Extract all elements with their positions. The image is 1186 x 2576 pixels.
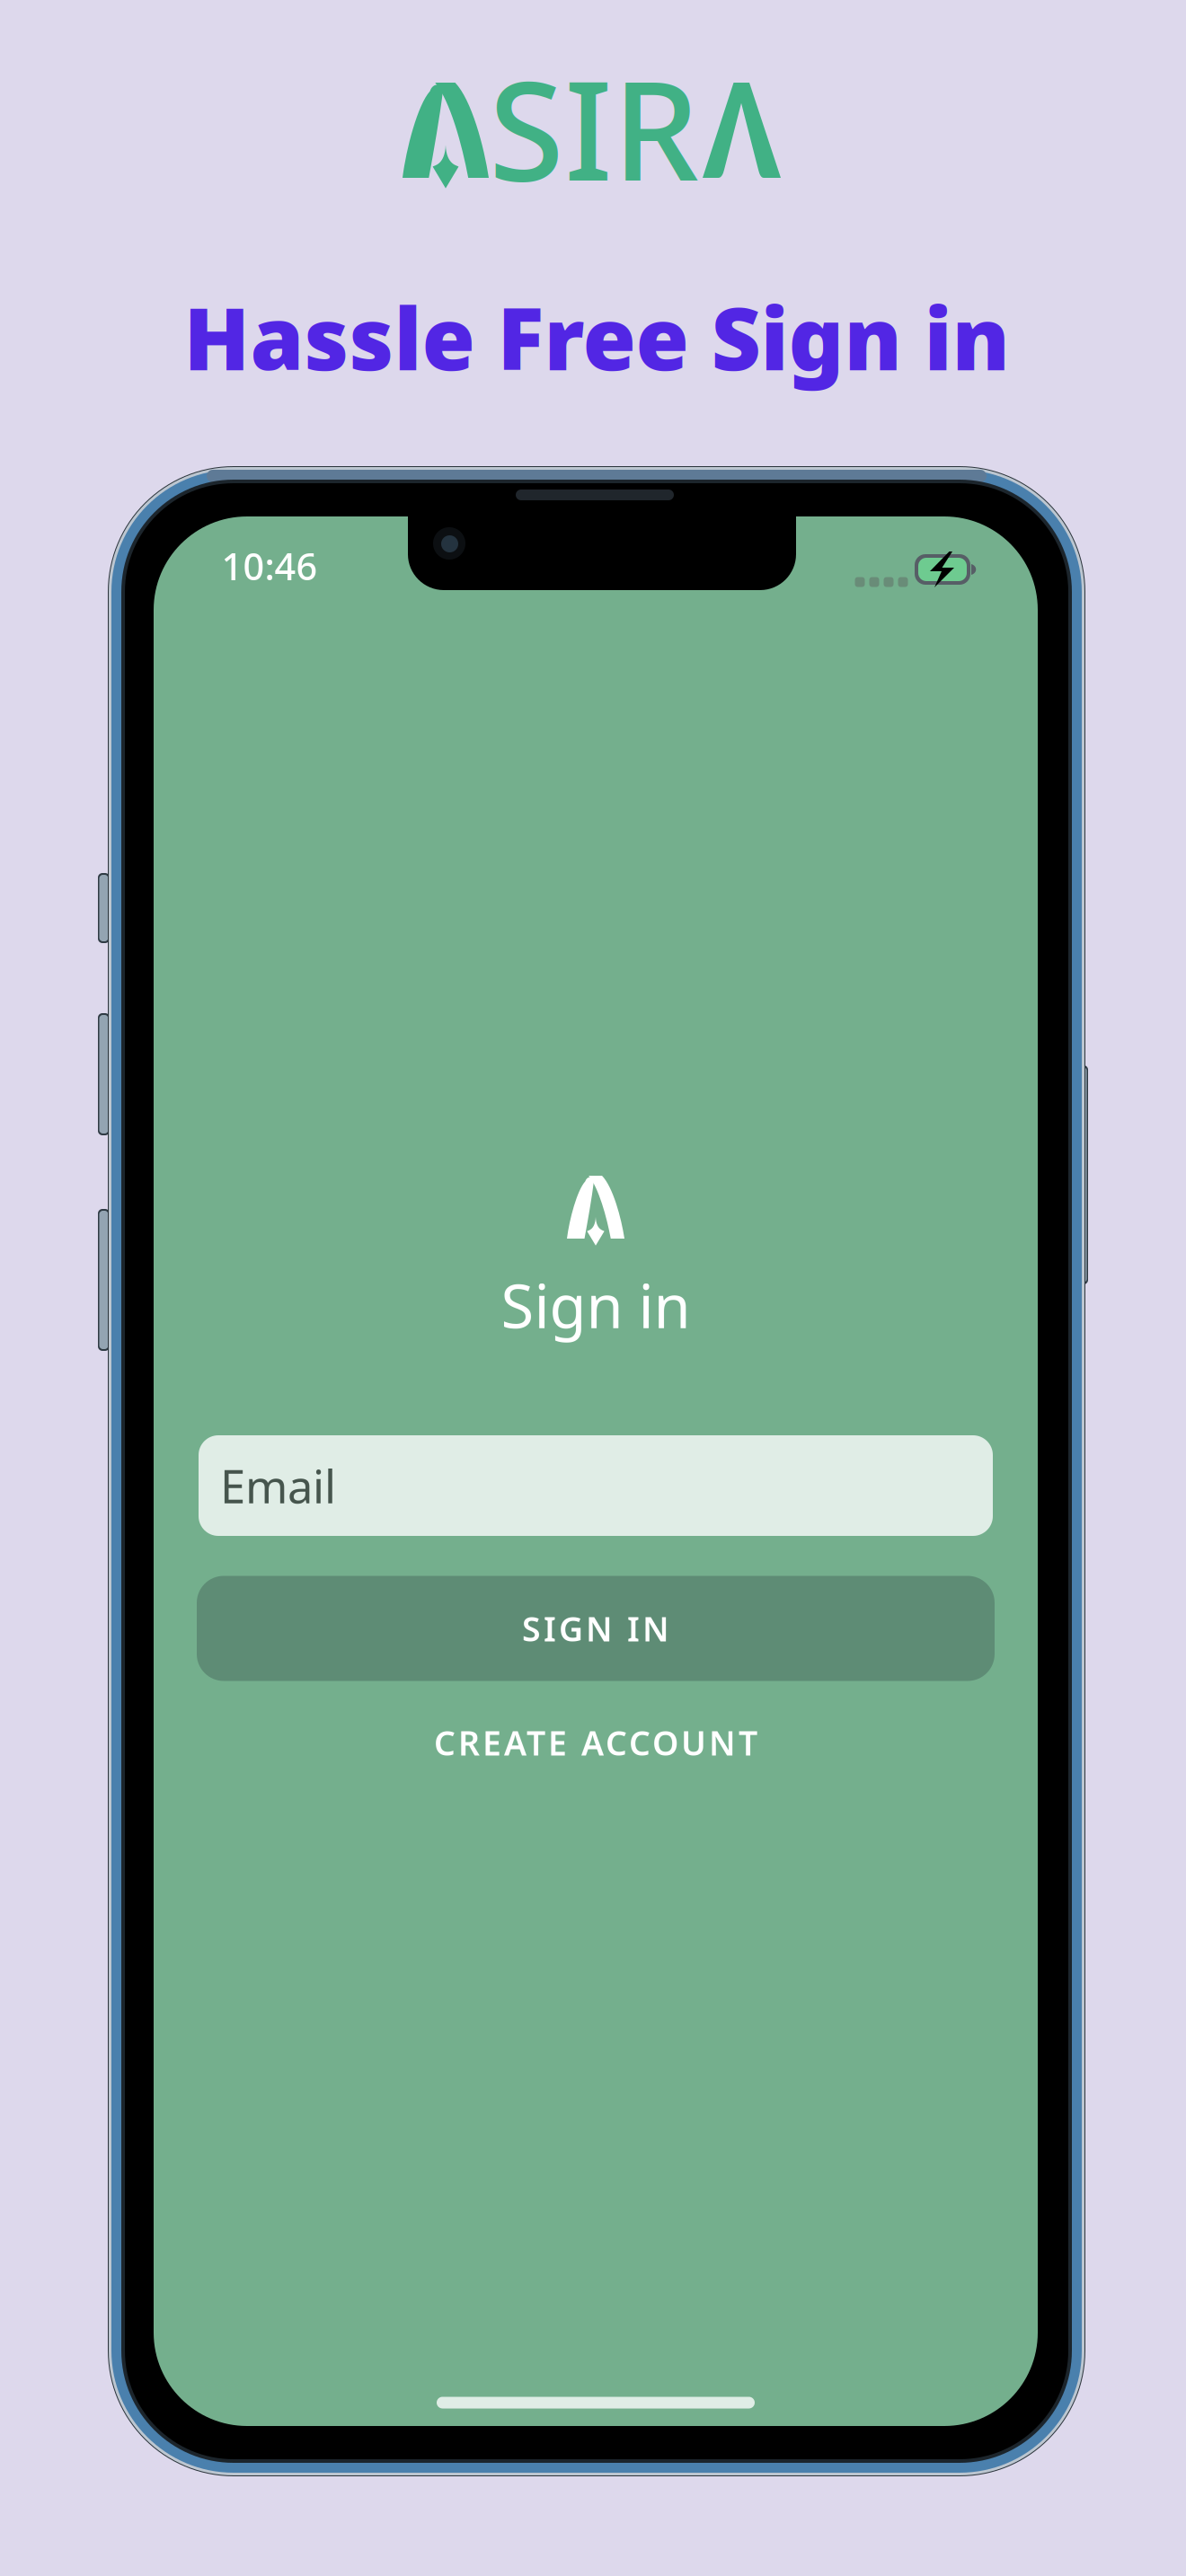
button[interactable]: SIGN IN [197, 1576, 995, 1681]
staticText: SIGN IN [522, 1606, 669, 1651]
staticText: Sign in [501, 1265, 690, 1345]
staticText: CREATE ACCOUNT [434, 1720, 757, 1765]
button[interactable]: CREATE ACCOUNT [197, 1709, 995, 1776]
staticText: 10:46 [221, 541, 318, 591]
staticText: Email [220, 1455, 336, 1516]
button[interactable]: Email [199, 1435, 993, 1536]
staticText: Hassle Free Sign in [184, 280, 1009, 394]
staticText: SIR [489, 37, 699, 218]
